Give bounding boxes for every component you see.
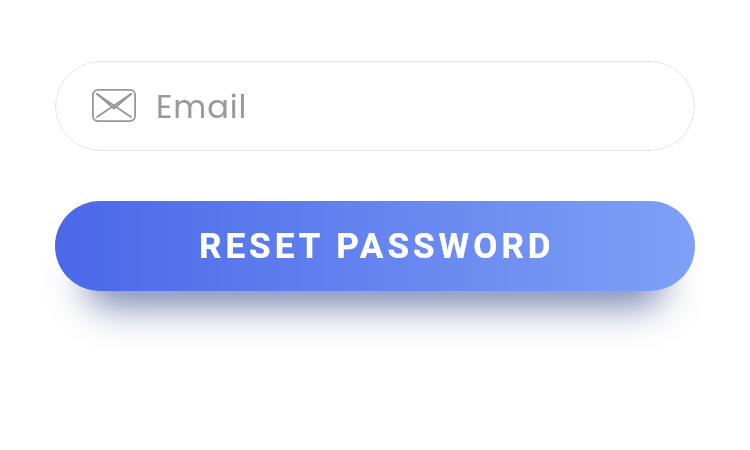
button[interactable]: Email address — [55, 61, 695, 151]
staticText: RESET PASSWORD — [199, 226, 555, 267]
staticText: Email — [156, 84, 248, 129]
other: Email address — [92, 89, 136, 122]
button[interactable]: RESET PASSWORD — [55, 201, 695, 291]
